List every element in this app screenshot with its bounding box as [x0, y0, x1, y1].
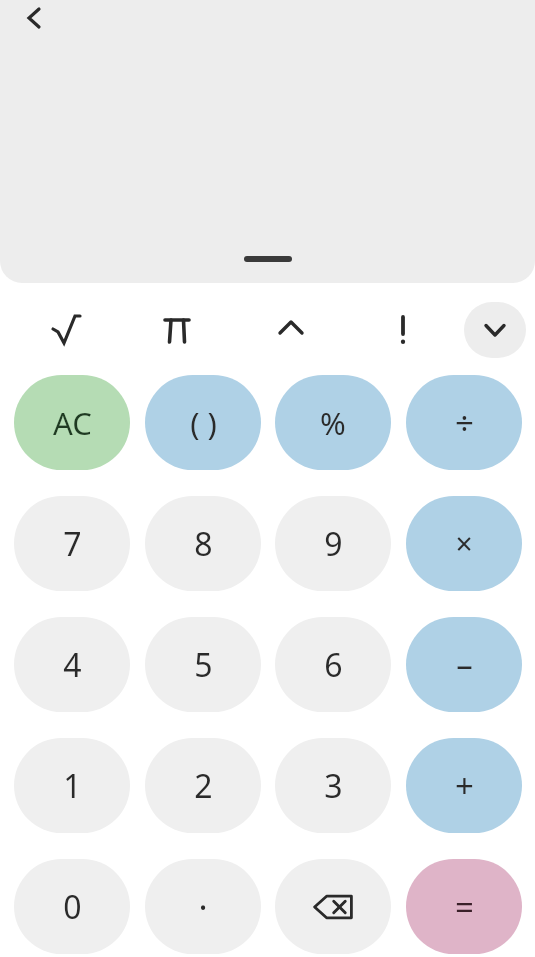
button[interactable]: 5 — [145, 617, 261, 712]
button[interactable]: 2 — [145, 738, 261, 833]
button[interactable]: + — [406, 738, 522, 833]
button[interactable]: 4 — [14, 617, 130, 712]
button[interactable]: Pi — [147, 302, 207, 358]
staticText: 3 — [324, 764, 343, 808]
staticText: · — [198, 884, 208, 930]
staticText: 9 — [324, 522, 343, 566]
staticText: × — [455, 523, 473, 564]
button[interactable]: 8 — [145, 496, 261, 591]
button[interactable]: 0 — [14, 859, 130, 954]
staticText: AC — [53, 402, 92, 444]
staticText: 6 — [324, 643, 343, 687]
button[interactable]: Factorial — [373, 302, 433, 358]
staticText: % — [320, 402, 346, 444]
staticText: 7 — [63, 522, 82, 566]
button[interactable]: · — [145, 859, 261, 954]
staticText: 4 — [63, 643, 82, 687]
button[interactable]: 1 — [14, 738, 130, 833]
staticText: ( ) — [190, 402, 217, 444]
staticText: 5 — [194, 643, 213, 687]
staticText: 0 — [63, 885, 82, 929]
button[interactable]: Back — [14, 0, 54, 30]
button[interactable]: × — [406, 496, 522, 591]
button[interactable]: 3 — [275, 738, 391, 833]
button[interactable]: 7 — [14, 496, 130, 591]
staticText: – — [456, 642, 473, 687]
staticText: 1 — [63, 764, 82, 808]
staticText: 2 — [194, 764, 213, 808]
button[interactable]: Backspace — [275, 859, 391, 954]
staticText: 8 — [194, 522, 213, 566]
button[interactable]: AC — [14, 375, 130, 470]
button[interactable]: % — [275, 375, 391, 470]
staticText: = — [455, 884, 474, 929]
button[interactable]: Power — [261, 302, 321, 358]
button[interactable]: Drag handle — [238, 250, 298, 268]
button[interactable]: 9 — [275, 496, 391, 591]
button[interactable]: – — [406, 617, 522, 712]
button[interactable]: ( ) — [145, 375, 261, 470]
button[interactable]: = — [406, 859, 522, 954]
staticText: ÷ — [455, 400, 474, 445]
button[interactable]: Sqrt — [36, 302, 96, 358]
staticText: + — [455, 763, 474, 808]
button[interactable]: Collapse functions — [464, 302, 526, 358]
button[interactable]: 6 — [275, 617, 391, 712]
button[interactable]: ÷ — [406, 375, 522, 470]
